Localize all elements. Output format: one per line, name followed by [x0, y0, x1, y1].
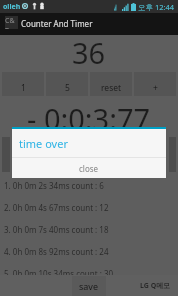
- button[interactable]: 4. 0h 0m 8s 92ms count : 24: [0, 240, 178, 262]
- staticText: LG Q메모: [140, 281, 171, 291]
- button[interactable]: 1: [2, 72, 44, 96]
- button[interactable]: 1. 0h 0m 2s 34ms count : 6: [0, 174, 178, 196]
- staticText: 5: [65, 82, 70, 94]
- staticText: save: [79, 280, 99, 292]
- staticText: time over: [19, 136, 68, 151]
- button[interactable]: 2. 0h 0m 4s 67ms count : 12: [0, 196, 178, 218]
- button[interactable]: save: [72, 276, 106, 296]
- staticText: 3. 0h 0m 7s 40ms count : 18: [4, 224, 109, 235]
- staticText: 4. 0h 0m 8s 92ms count : 24: [4, 246, 109, 257]
- staticText: C&T: [5, 16, 18, 29]
- button[interactable]: 5. 0h 0m 10s 34ms count : 30: [0, 262, 178, 284]
- staticText: 36: [72, 33, 106, 65]
- button[interactable]: 3. 0h 0m 7s 40ms count : 18: [0, 218, 178, 240]
- button[interactable]: reset: [90, 72, 132, 96]
- staticText: reset: [101, 82, 122, 94]
- button[interactable]: 5: [46, 72, 88, 96]
- staticText: - 0:0:3:77: [27, 99, 151, 129]
- staticText: 2. 0h 0m 4s 67ms count : 12: [4, 202, 109, 213]
- staticText: 오후 12:44: [138, 2, 175, 12]
- staticText: olleh: [3, 2, 21, 12]
- staticText: Counter And Timer: [21, 18, 93, 29]
- staticText: 1. 0h 0m 2s 34ms count : 6: [4, 180, 104, 191]
- staticText: +: [153, 82, 158, 94]
- staticText: close: [79, 163, 99, 174]
- staticText: 5. 0h 0m 10s 34ms count : 30: [4, 268, 114, 279]
- button[interactable]: close: [12, 158, 166, 178]
- staticText: 1: [21, 82, 26, 94]
